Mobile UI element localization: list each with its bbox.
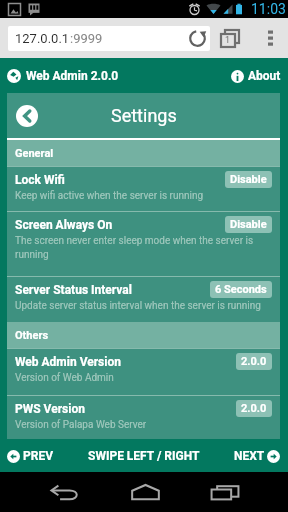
staticText: 6 Seconds [215,283,267,296]
button[interactable]: Lock Wifi [7,166,280,211]
staticText: Disable [230,173,267,186]
button[interactable]: PWS Version [7,395,280,439]
button[interactable]: Back [38,472,90,512]
staticText: Settings [111,105,177,126]
staticText: Others [15,329,49,342]
button[interactable]: Tabs [216,21,244,55]
button[interactable]: Screen Always On [7,211,280,276]
staticText: Server Status Interval [15,283,210,297]
staticText: Web Admin Version [15,355,236,369]
staticText: 127.0.0.1 [15,31,70,46]
button[interactable]: About [231,69,281,83]
button[interactable]: 127.0.0.1 [8,26,210,51]
staticText: Screen Always On [15,218,225,232]
staticText: Keep wifi active when the server is runn… [15,190,204,202]
staticText: 11:03 [251,1,286,17]
button[interactable]: Reload [184,26,210,51]
staticText: Version of Palapa Web Server [15,419,147,431]
button[interactable]: Web Admin Version [7,348,280,395]
staticText: 1 [225,35,231,46]
button[interactable]: Back [15,104,39,128]
staticText: Update server status interval when the s… [15,300,261,312]
staticText: Web Admin 2.0.0 [26,69,119,83]
staticText: About [248,69,281,83]
staticText: The screen never enter sleep mode when t… [15,235,272,261]
button[interactable]: Home [119,472,171,512]
button[interactable]: NEXT [234,449,280,463]
button[interactable]: PREV [7,449,54,463]
staticText: Lock Wifi [15,173,225,187]
staticText: 2.0.0 [241,402,267,415]
staticText: NEXT [234,449,265,463]
staticText: SWIPE LEFT / RIGHT [88,449,200,463]
staticText: :9999 [70,31,103,46]
button[interactable]: Server Status Interval [7,276,280,322]
staticText: 2.0.0 [241,355,267,368]
staticText: Disable [230,218,267,231]
staticText: General [15,147,54,160]
staticText: PREV [23,449,54,463]
staticText: Version of Web Admin [15,372,114,384]
staticText: PWS Version [15,402,236,416]
button[interactable]: Recent apps [199,472,251,512]
button[interactable]: More options [257,21,283,55]
